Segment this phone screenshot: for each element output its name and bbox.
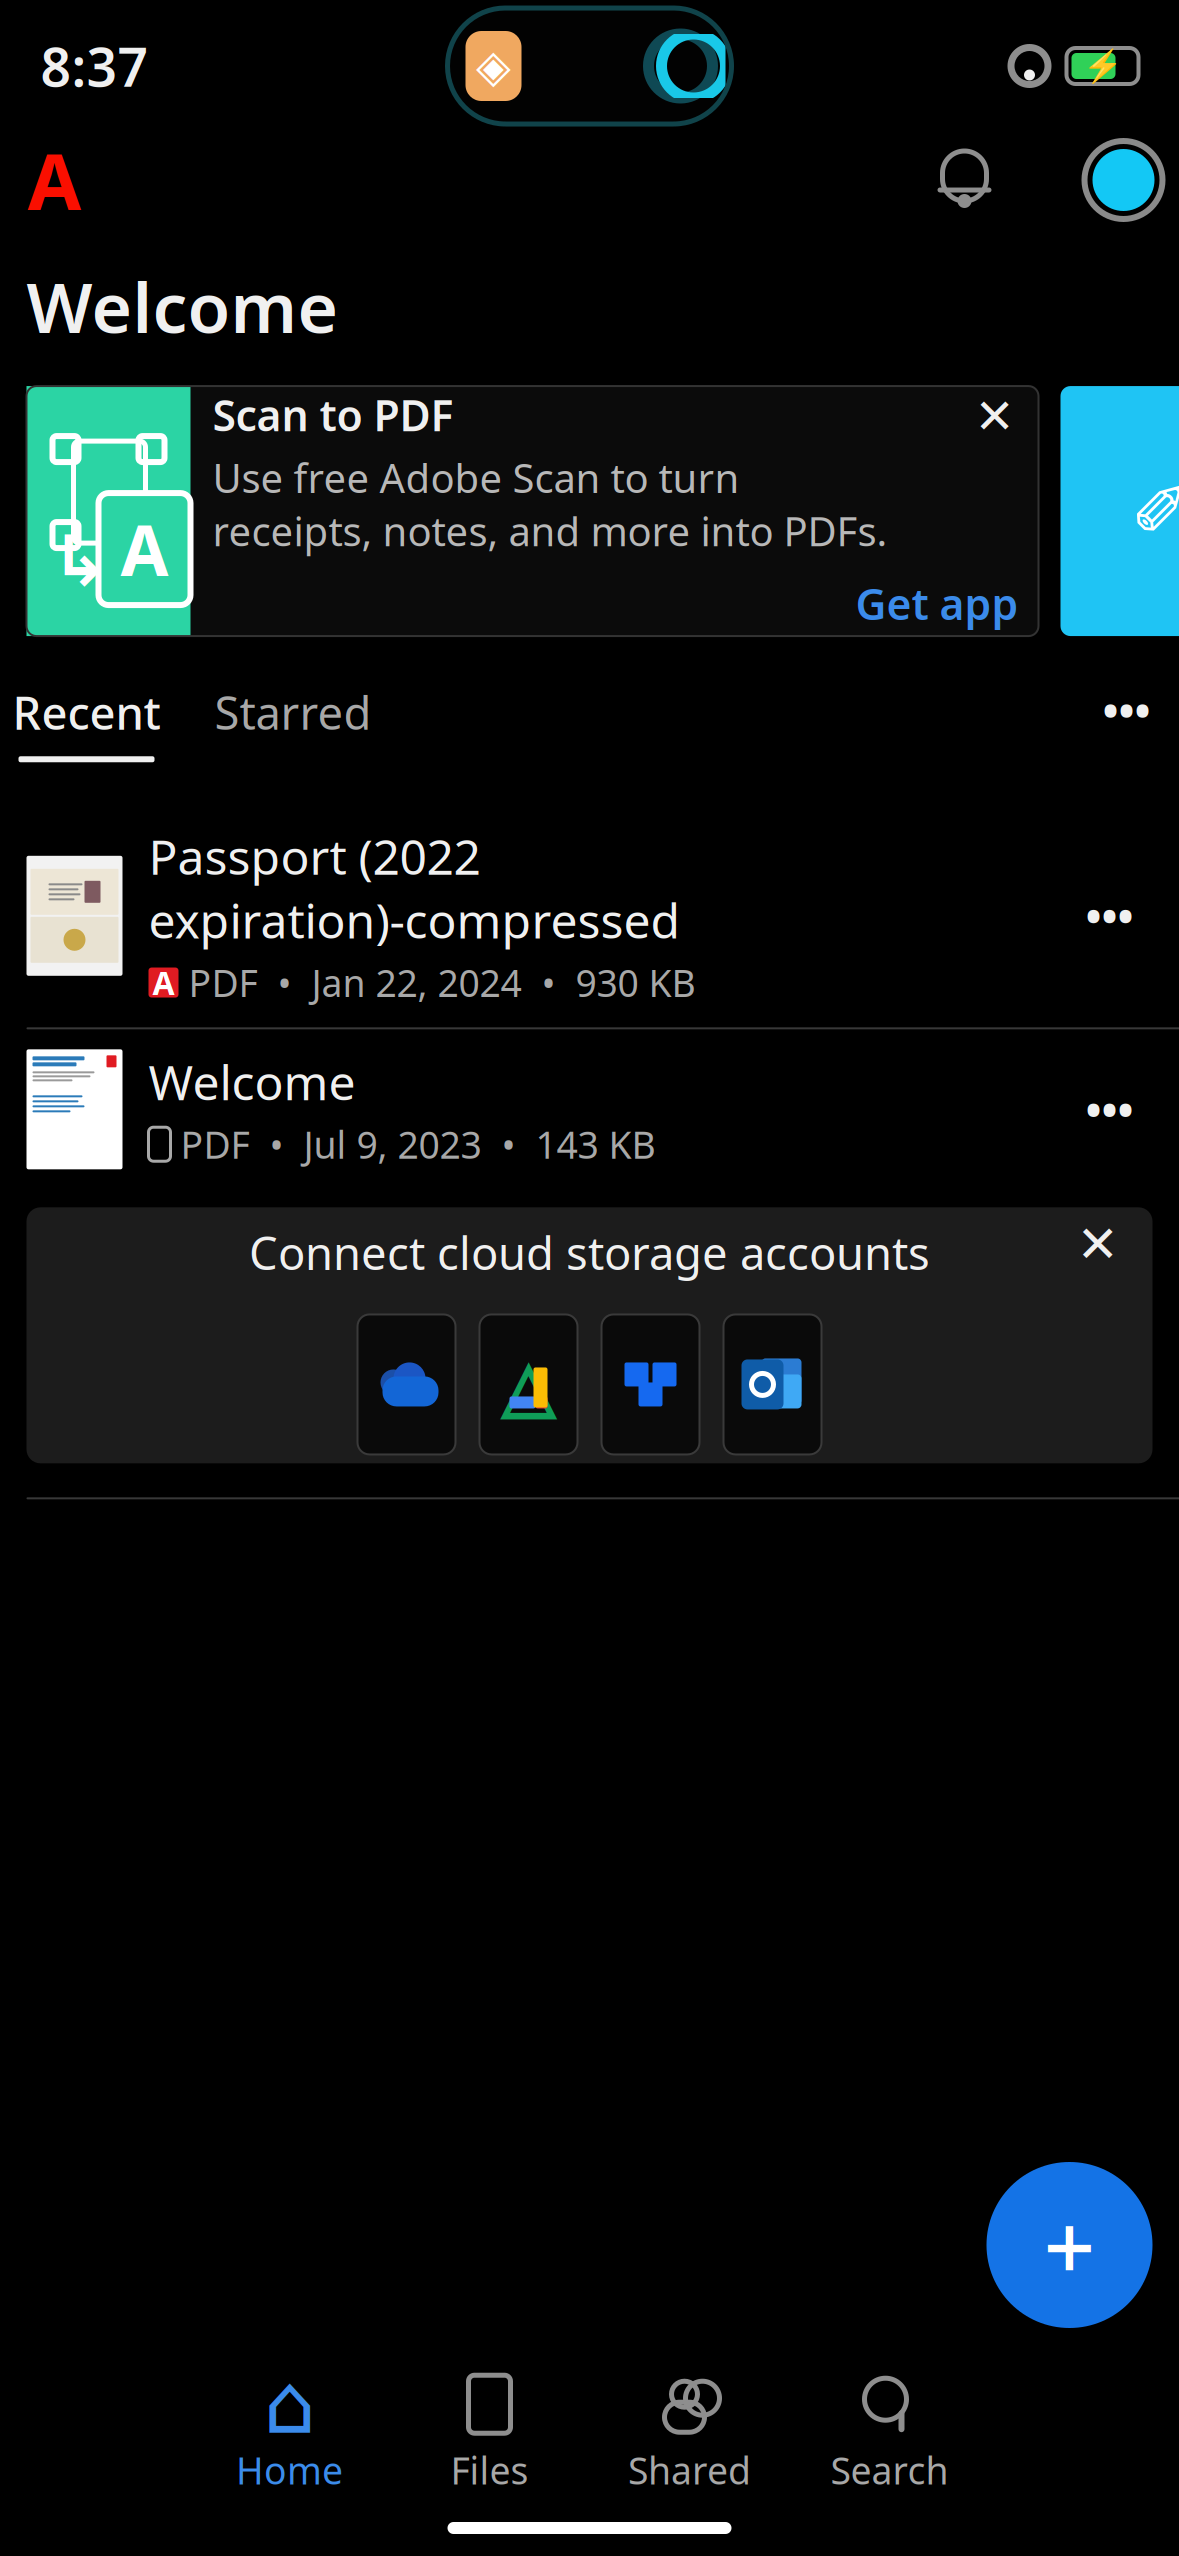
- staticText: •••: [1085, 887, 1133, 944]
- staticText: ↳: [51, 522, 109, 600]
- button[interactable]: Welcome: [0, 1029, 1179, 1189]
- staticText: Passport (2022 expiration)-compressed: [148, 824, 680, 952]
- button[interactable]: Recent: [12, 682, 160, 762]
- staticText: Recent: [12, 682, 160, 742]
- staticText: PDF • Jan 22, 2024 • 930 KB: [188, 958, 695, 1007]
- button[interactable]: Connect OneDrive: [357, 1314, 455, 1454]
- staticText: +: [1043, 2185, 1095, 2305]
- staticText: ◈: [476, 40, 511, 92]
- staticText: 8:37: [40, 31, 148, 101]
- button[interactable]: Notifications: [922, 138, 1006, 222]
- staticText: Files: [450, 2445, 528, 2495]
- button[interactable]: Dismiss cloud storage: [1064, 1211, 1130, 1277]
- button[interactable]: Starred: [214, 682, 371, 762]
- button[interactable]: Dismiss: [964, 386, 1024, 446]
- staticText: Home: [236, 2445, 343, 2495]
- staticText: PDF • Jul 9, 2023 • 143 KB: [180, 1119, 655, 1169]
- staticText: •••: [1102, 682, 1150, 738]
- button[interactable]: Connect Google Drive: [479, 1314, 577, 1454]
- button[interactable]: Shared: [589, 2374, 789, 2494]
- staticText: Welcome: [26, 260, 338, 352]
- staticText: A: [152, 961, 174, 1004]
- button[interactable]: Connect Outlook: [723, 1314, 821, 1454]
- staticText: A: [120, 503, 168, 595]
- staticText: ⌂: [263, 2357, 315, 2451]
- button[interactable]: Create: [986, 2162, 1152, 2328]
- button[interactable]: Adobe Acrobat: [12, 138, 96, 222]
- staticText: Connect cloud storage accounts: [249, 1222, 930, 1282]
- staticText: Starred: [214, 682, 371, 742]
- button[interactable]: Search: [789, 2374, 989, 2494]
- button[interactable]: ↳: [26, 386, 1038, 636]
- staticText: ✕: [1076, 1216, 1118, 1273]
- button[interactable]: Account: [1080, 137, 1166, 223]
- button[interactable]: Fill and Sign: [1060, 386, 1179, 636]
- staticText: ✐: [1130, 470, 1179, 552]
- button[interactable]: More actions for Welcome: [1066, 1074, 1152, 1144]
- button[interactable]: Connect Dropbox: [601, 1314, 699, 1454]
- staticText: Get app: [855, 575, 1018, 632]
- button[interactable]: Passport (2022 expiration)-compressed: [0, 804, 1179, 1027]
- button[interactable]: More actions for Passport (2022 expirati…: [1066, 881, 1152, 951]
- staticText: A: [27, 129, 81, 231]
- staticText: Scan to PDF: [212, 386, 453, 443]
- button[interactable]: Get app: [849, 571, 1024, 636]
- staticText: Welcome: [148, 1050, 355, 1113]
- staticText: Use free Adobe Scan to turn receipts, no…: [212, 451, 887, 557]
- staticText: ⚡: [1082, 48, 1122, 84]
- staticText: Shared: [628, 2445, 751, 2495]
- staticText: ✕: [974, 389, 1014, 444]
- staticText: •••: [1085, 1081, 1133, 1138]
- staticText: ▲: [510, 1363, 547, 1418]
- staticText: ▲: [500, 1342, 557, 1427]
- button[interactable]: Files: [389, 2374, 589, 2494]
- staticText: Search: [830, 2445, 948, 2495]
- button[interactable]: ⌂: [189, 2374, 389, 2494]
- button[interactable]: More options: [1086, 682, 1166, 738]
